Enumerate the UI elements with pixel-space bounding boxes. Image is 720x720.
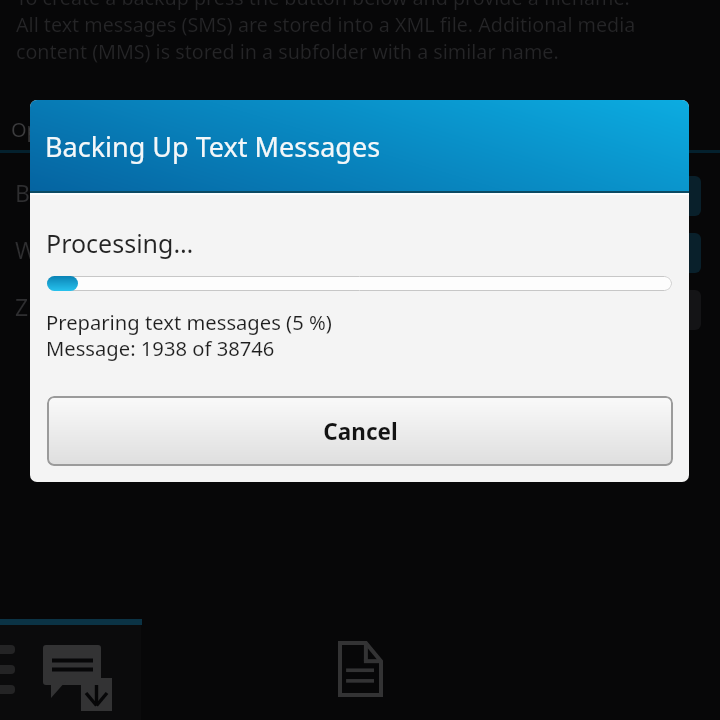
staticText: Preparing text messages (5 %) [46, 308, 332, 336]
staticText: All text messages (SMS) are stored into … [16, 11, 636, 38]
button[interactable]: Backup messages [0, 625, 141, 720]
button[interactable]: With attachments [0, 224, 720, 274]
button[interactable]: Backup messages [0, 167, 720, 217]
staticText: Zip output [15, 291, 128, 322]
staticText: Cancel [323, 416, 398, 447]
button[interactable]: Zip output [0, 281, 720, 331]
staticText: To create a backup press the button belo… [16, 0, 630, 11]
staticText: With attachments [15, 234, 207, 265]
staticText: Options [11, 116, 86, 143]
staticText: Processing… [46, 226, 194, 260]
staticText: Backing Up Text Messages [45, 128, 381, 165]
staticText: Message: 1938 of 38746 [46, 334, 275, 362]
staticText: content (MMS) is stored in a subfolder w… [16, 38, 559, 65]
staticText: Backup messages [15, 177, 209, 208]
button[interactable]: Cancel [47, 396, 673, 466]
button[interactable]: Files [141, 625, 577, 720]
